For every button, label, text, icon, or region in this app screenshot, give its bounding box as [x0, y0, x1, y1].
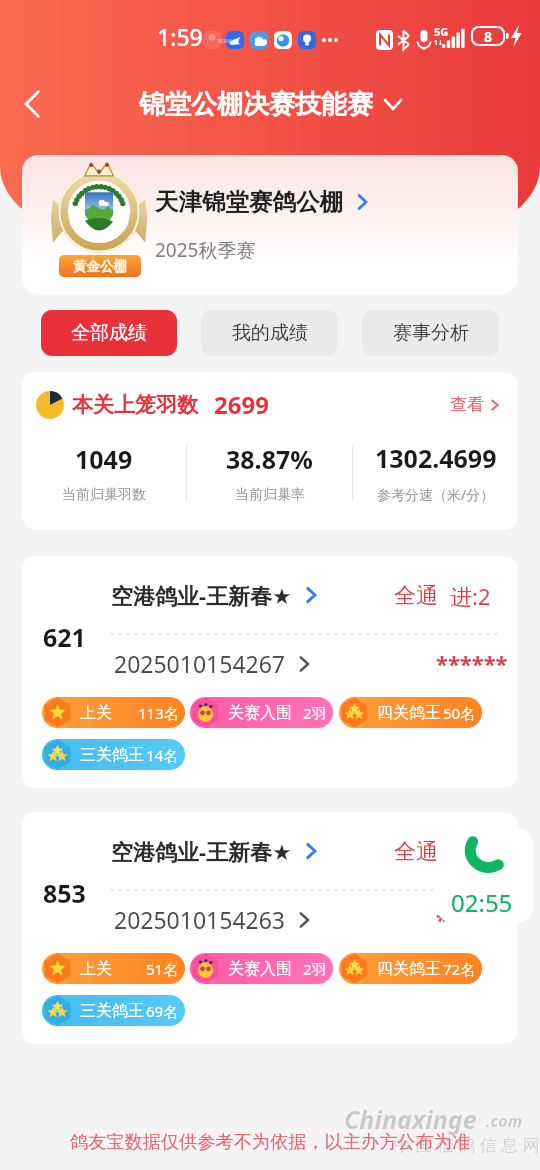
staticText: 我的成绩 — [232, 321, 308, 345]
staticText: Chinaxinge — [344, 1102, 477, 1136]
staticText: 本关上笼羽数 — [72, 392, 198, 418]
staticText: 72名 — [443, 959, 476, 979]
staticText: 全通 — [394, 582, 438, 610]
staticText: 2羽 — [303, 703, 327, 723]
staticText: 三关鸽王 — [80, 1001, 144, 1021]
button[interactable]: Back — [10, 82, 54, 126]
staticText: 四关鸽王 — [377, 959, 441, 979]
button[interactable]: 关赛入围 — [190, 697, 333, 728]
button[interactable]: 黄金公棚 — [22, 155, 518, 294]
staticText: 69名 — [146, 1001, 179, 1021]
staticText: 三关鸽王 — [80, 745, 144, 765]
staticText: 02:55 — [451, 886, 513, 919]
button[interactable]: 赛事分析 — [362, 310, 499, 356]
staticText: 1:59 — [157, 21, 203, 52]
staticText: 8 — [479, 27, 497, 46]
button[interactable]: 三关鸽王 — [42, 739, 185, 770]
staticText: 四关鸽王 — [377, 703, 441, 723]
staticText: 2025010154263 — [114, 904, 286, 935]
button[interactable]: 关赛入围 — [190, 953, 333, 984]
staticText: 14名 — [146, 745, 179, 765]
staticText: 全通 — [394, 838, 438, 866]
staticText: 1↓ — [434, 38, 444, 47]
staticText: 2025010154267 — [114, 648, 286, 679]
staticText: 进:2 — [450, 837, 491, 867]
button[interactable]: 查看 — [450, 394, 502, 415]
button[interactable]: 上关 — [42, 953, 185, 984]
button[interactable]: 空港鸽业-王新春★ — [22, 812, 518, 1044]
staticText: 621 — [43, 620, 86, 654]
staticText: 上关 — [80, 959, 112, 979]
staticText: 全部成绩 — [71, 321, 147, 345]
button[interactable]: 四关鸽王 — [339, 953, 482, 984]
staticText: 查看 — [450, 394, 484, 415]
staticText: 当前归巢率 — [235, 486, 305, 504]
staticText: ****** — [436, 648, 508, 678]
staticText: 鸽友宝数据仅供参考不为依据，以主办方公布为准 — [0, 1130, 540, 1153]
staticText: 黄金公棚 — [73, 258, 127, 275]
staticText: 2699 — [214, 388, 269, 421]
button[interactable]: 四关鸽王 — [339, 697, 482, 728]
button[interactable]: Call in progress — [436, 828, 533, 923]
staticText: 113名 — [138, 703, 179, 723]
staticText: ****** — [436, 904, 508, 934]
staticText: 赛事分析 — [393, 321, 469, 345]
staticText: 853 — [43, 876, 86, 910]
staticText: 空港鸽业-王新春★ — [111, 580, 292, 610]
button[interactable]: 上关 — [42, 697, 185, 728]
staticText: 51名 — [146, 959, 179, 979]
staticText: 38.87% — [226, 442, 313, 476]
staticText: 1302.4699 — [375, 441, 497, 475]
staticText: 关赛入围 — [228, 959, 292, 979]
staticText: 上关 — [80, 703, 112, 723]
button[interactable]: 我的成绩 — [201, 310, 338, 356]
staticText: 50名 — [443, 703, 476, 723]
staticText: 参考分速（米/分） — [377, 485, 495, 504]
staticText: 2025秋季赛 — [155, 237, 256, 263]
button[interactable]: 三关鸽王 — [42, 995, 185, 1026]
staticText: 空港鸽业-王新春★ — [111, 836, 292, 866]
staticText: 当前归巢羽数 — [62, 486, 146, 504]
staticText: 中 国 信 鸽 信 息 网 — [394, 1133, 540, 1156]
staticText: 天津锦堂赛鸽公棚 — [155, 187, 343, 217]
button[interactable]: 空港鸽业-王新春★ — [22, 556, 518, 788]
staticText: 1049 — [75, 442, 133, 476]
staticText: 锦堂公棚决赛技能赛 — [139, 88, 373, 121]
staticText: 2羽 — [303, 959, 327, 979]
staticText: .com — [486, 1110, 523, 1132]
staticText: 5G — [434, 24, 449, 39]
staticText: 关赛入围 — [228, 703, 292, 723]
button[interactable]: 全部成绩 — [41, 310, 177, 356]
button[interactable]: 锦堂公棚决赛技能赛 — [139, 88, 402, 121]
staticText: 进:2 — [450, 581, 491, 611]
staticText: HUAWEI — [218, 38, 239, 45]
